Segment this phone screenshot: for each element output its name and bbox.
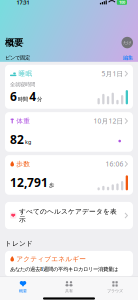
staticText: 睡眠 <box>18 70 32 78</box>
staticText: 歩数 <box>16 160 30 168</box>
staticText: 100 <box>119 0 125 5</box>
staticText: kg <box>25 138 31 145</box>
staticText: 17:31 <box>16 0 29 6</box>
staticText: 6 <box>10 88 17 104</box>
button[interactable]: 体重 <box>5 112 133 152</box>
staticText: 16:06 <box>105 159 123 168</box>
button[interactable]: 概要 <box>0 281 46 293</box>
staticText: 共有 <box>65 289 73 293</box>
button[interactable]: アクティブエネルギー <box>5 251 133 277</box>
staticText: 10月12日 <box>93 117 123 125</box>
button[interactable]: 睡眠 <box>5 65 133 109</box>
staticText: 全就寝時間 <box>10 81 35 88</box>
staticText: 4 <box>29 88 36 104</box>
staticText: 歩 <box>49 182 54 189</box>
staticText: すべてのヘルスケアデータを表示 <box>19 207 117 224</box>
staticText: 分 <box>37 96 42 103</box>
button[interactable]: 編集 <box>123 54 133 61</box>
staticText: トレンド <box>5 239 33 248</box>
button[interactable]: 歩数 <box>5 155 133 195</box>
staticText: 82 <box>10 131 24 147</box>
staticText: 概要 <box>19 289 27 293</box>
button[interactable]: すべてのヘルスケアデータを表示 <box>5 202 133 229</box>
staticText: あなたの過去8週間の平均キロカロリー消費量は <box>10 265 118 273</box>
staticText: ピンで固定 <box>5 54 30 61</box>
staticText: 概要 <box>5 37 23 48</box>
staticText: 体重 <box>16 117 30 125</box>
button[interactable]: ブラウズ <box>92 281 138 293</box>
staticText: アクティブエネルギー <box>16 255 86 263</box>
staticText: 5月1日 <box>101 69 123 78</box>
staticText: たけ <box>123 40 131 45</box>
staticText: 時間 <box>18 96 28 103</box>
staticText: 編集 <box>123 54 133 61</box>
staticText: 12,791 <box>10 174 48 190</box>
staticText: ブラウズ <box>107 289 123 293</box>
button[interactable]: プロフィール <box>121 37 133 48</box>
button[interactable]: 共有 <box>46 281 92 293</box>
